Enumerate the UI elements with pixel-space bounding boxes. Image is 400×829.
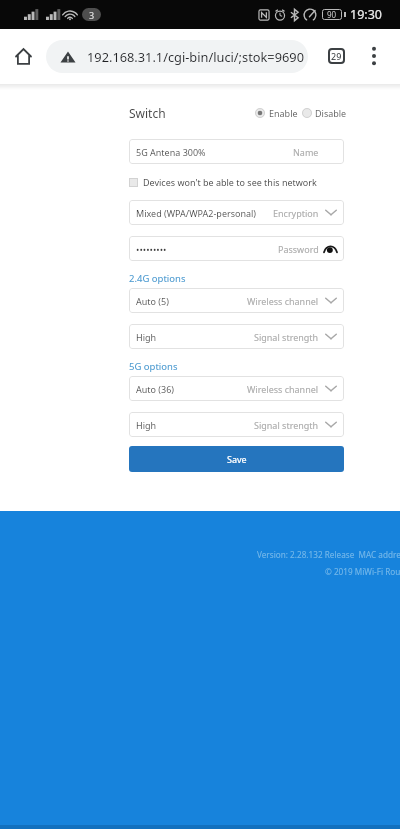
button[interactable]: High: [129, 324, 344, 349]
button[interactable]: 5G Antena 300%: [129, 139, 344, 164]
staticText: 5G Antena 300%: [136, 146, 206, 158]
staticText: Signal strength: [254, 331, 319, 343]
button[interactable]: Devices won't be able to see this networ…: [129, 176, 344, 188]
staticText: Wireless channel: [247, 295, 319, 307]
button[interactable]: Tabs: [327, 48, 345, 64]
button[interactable]: Auto (5): [129, 288, 344, 313]
staticText: 5G options: [129, 360, 178, 373]
button[interactable]: Enable: [255, 107, 298, 119]
staticText: •••••••••: [136, 243, 167, 255]
staticText: Password: [278, 243, 319, 255]
staticText: 90: [327, 9, 337, 20]
staticText: 192.168.31.1/cgi-bin/luci/;stok=9690: [87, 48, 304, 65]
staticText: 29: [331, 50, 342, 62]
staticText: Mixed (WPA/WPA2-personal): [136, 207, 257, 219]
staticText: Encryption: [273, 207, 319, 219]
staticText: © 2019 MiWi-Fi Router: [325, 566, 400, 577]
staticText: 19:30: [350, 6, 382, 23]
staticText: Enable: [269, 107, 298, 119]
staticText: High: [136, 331, 157, 343]
staticText: Wireless channel: [247, 383, 319, 395]
staticText: Switch: [129, 105, 166, 121]
staticText: Name: [293, 146, 319, 158]
button[interactable]: Home: [7, 40, 39, 72]
button[interactable]: Auto (36): [129, 376, 344, 401]
button[interactable]: 192.168.31.1/cgi-bin/luci/;stok=9690: [46, 40, 308, 73]
button[interactable]: Disable: [302, 107, 347, 119]
staticText: Version: 2.28.132 Release MAC address: C…: [257, 549, 400, 560]
staticText: Signal strength: [254, 419, 319, 431]
staticText: 3: [89, 9, 95, 21]
staticText: Auto (36): [136, 383, 175, 395]
button[interactable]: •••••••••: [129, 236, 344, 261]
staticText: High: [136, 419, 157, 431]
staticText: Save: [227, 453, 247, 465]
staticText: Devices won't be able to see this networ…: [143, 176, 317, 188]
button[interactable]: Mixed (WPA/WPA2-personal): [129, 200, 344, 225]
staticText: 2.4G options: [129, 272, 186, 285]
button[interactable]: More options: [364, 43, 384, 69]
button[interactable]: High: [129, 412, 344, 437]
button[interactable]: Save: [129, 446, 344, 472]
staticText: Disable: [315, 107, 347, 119]
staticText: Auto (5): [136, 295, 169, 307]
